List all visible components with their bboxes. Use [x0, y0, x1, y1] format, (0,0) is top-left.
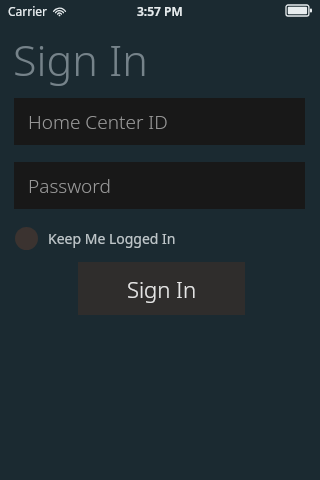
staticText: 3:57 PM [137, 3, 183, 19]
staticText: Carrier [8, 3, 48, 19]
staticText: Password [28, 173, 111, 199]
other: Battery full [286, 5, 312, 16]
button[interactable]: Home Center ID [14, 98, 305, 145]
button[interactable]: Keep Me Logged In [14, 225, 177, 252]
staticText: Sign In [127, 274, 197, 304]
staticText: Sign In [13, 30, 148, 89]
staticText: Keep Me Logged In [48, 229, 176, 248]
button[interactable]: Password [14, 162, 305, 209]
other: Wi-Fi signal [53, 6, 66, 17]
button[interactable]: Sign In [78, 262, 245, 315]
staticText: Home Center ID [28, 109, 168, 135]
